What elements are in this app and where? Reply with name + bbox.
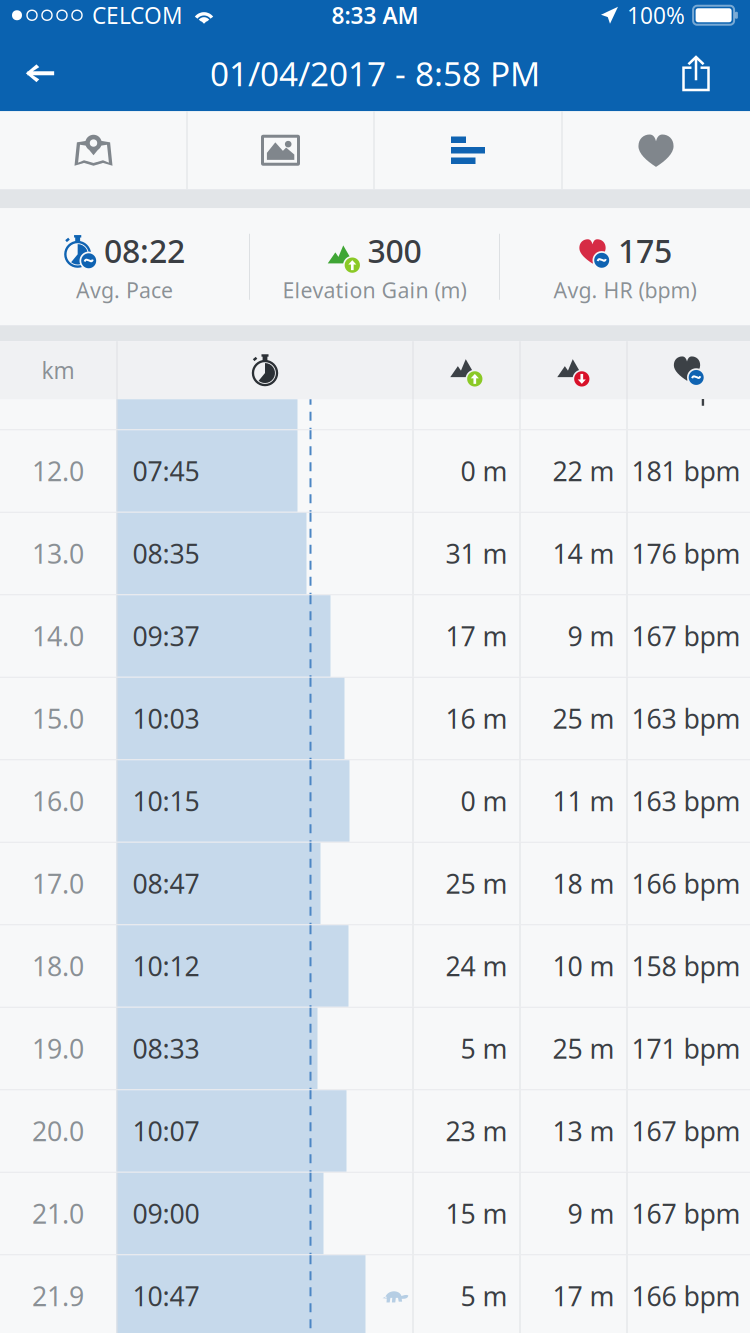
- staticText: 166 bpm: [631, 866, 740, 901]
- staticText: 167 bpm: [631, 1196, 740, 1231]
- staticText: 5 m: [460, 1278, 507, 1314]
- staticText: 15 m: [445, 1196, 507, 1231]
- staticText: 08:35: [132, 536, 199, 571]
- staticText: 14 m: [552, 536, 614, 571]
- staticText: 23 m: [445, 1113, 507, 1149]
- staticText: 300: [367, 229, 421, 272]
- staticText: 163 bpm: [631, 701, 740, 736]
- staticText: 167 bpm: [631, 1113, 740, 1149]
- button[interactable]: 13.0: [0, 513, 750, 594]
- button[interactable]: Heart rate: [562, 111, 749, 189]
- staticText: 8:33 AM: [331, 0, 418, 30]
- button[interactable]: Back: [4, 35, 76, 111]
- staticText: 25 m: [552, 1031, 614, 1066]
- staticText: CELCOM: [92, 0, 183, 30]
- staticText: 19.0: [32, 1031, 84, 1066]
- staticText: 175: [618, 229, 672, 272]
- button[interactable]: Splits: [374, 111, 561, 189]
- button[interactable]: 19.0: [0, 1008, 750, 1089]
- staticText: 16.0: [32, 783, 84, 819]
- staticText: 181 bpm: [631, 453, 740, 489]
- button[interactable]: Photos: [187, 111, 373, 189]
- staticText: 14.0: [32, 618, 84, 654]
- staticText: 08:47: [132, 866, 199, 901]
- button[interactable]: 14.0: [0, 595, 750, 677]
- staticText: 0 m: [460, 783, 507, 819]
- staticText: 20.0: [32, 1113, 84, 1149]
- staticText: 25 m: [445, 866, 507, 901]
- staticText: 12.0: [32, 453, 84, 489]
- staticText: 08:22: [104, 229, 185, 272]
- button[interactable]: 11.0: [0, 399, 750, 429]
- staticText: 10:03: [132, 701, 199, 736]
- staticText: 16 m: [445, 701, 507, 736]
- button[interactable]: 12.0: [0, 430, 750, 512]
- staticText: 9 m: [567, 618, 614, 654]
- staticText: 01/04/2017 - 8:58 PM: [210, 51, 540, 95]
- staticText: 15.0: [32, 701, 84, 736]
- staticText: 31 m: [445, 536, 507, 571]
- staticText: 22 m: [552, 453, 614, 489]
- staticText: 9 m: [460, 371, 507, 406]
- staticText: 0 m: [460, 453, 507, 489]
- button[interactable]: 21.9: [0, 1255, 750, 1333]
- button[interactable]: 15.0: [0, 678, 750, 759]
- button[interactable]: Map: [0, 111, 186, 189]
- staticText: 24 m: [445, 948, 507, 984]
- staticText: 18.0: [32, 948, 84, 984]
- staticText: 9 m: [567, 1196, 614, 1231]
- staticText: 09:37: [132, 618, 199, 654]
- button[interactable]: 16.0: [0, 760, 750, 842]
- staticText: 10 m: [552, 948, 614, 984]
- staticText: Avg. HR (bpm): [553, 276, 696, 304]
- staticText: 176 bpm: [631, 536, 740, 571]
- staticText: 17.0: [32, 866, 84, 901]
- staticText: 18 m: [552, 866, 614, 901]
- staticText: 21.9: [32, 1278, 84, 1314]
- staticText: 21.0: [32, 1196, 84, 1231]
- staticText: 13 m: [552, 1113, 614, 1149]
- staticText: Elevation Gain (m): [282, 276, 466, 304]
- staticText: 171 bpm: [631, 1031, 740, 1066]
- button[interactable]: 18.0: [0, 925, 750, 1007]
- staticText: 10:47: [132, 1278, 199, 1314]
- staticText: 10:12: [132, 948, 199, 984]
- staticText: 163 bpm: [631, 783, 740, 819]
- staticText: 5 m: [460, 1031, 507, 1066]
- staticText: km: [41, 355, 74, 385]
- staticText: 07:41: [132, 371, 199, 406]
- staticText: 17 m: [445, 618, 507, 654]
- staticText: 11.0: [32, 371, 84, 406]
- staticText: 19 m: [552, 371, 614, 406]
- staticText: 10:15: [132, 783, 199, 819]
- button[interactable]: Share: [646, 35, 746, 111]
- staticText: 25 m: [552, 701, 614, 736]
- staticText: 178 bpm: [631, 371, 740, 406]
- staticText: 10:07: [132, 1113, 199, 1149]
- staticText: 166 bpm: [631, 1278, 740, 1314]
- staticText: Avg. Pace: [76, 276, 173, 304]
- staticText: 08:33: [132, 1031, 199, 1066]
- staticText: 158 bpm: [631, 948, 740, 984]
- button[interactable]: 17.0: [0, 843, 750, 924]
- button[interactable]: 20.0: [0, 1090, 750, 1172]
- staticText: 13.0: [32, 536, 84, 571]
- staticText: 167 bpm: [631, 618, 740, 654]
- staticText: 09:00: [132, 1196, 199, 1231]
- button[interactable]: 21.0: [0, 1173, 750, 1254]
- staticText: 07:45: [132, 453, 199, 489]
- staticText: 100%: [627, 0, 685, 30]
- staticText: 17 m: [552, 1278, 614, 1314]
- staticText: 11 m: [552, 783, 614, 819]
